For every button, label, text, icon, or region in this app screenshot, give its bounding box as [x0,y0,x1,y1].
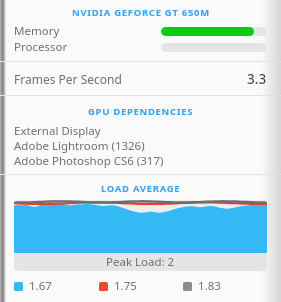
staticText: 1.75 [114,278,137,294]
staticText: 1.83 [198,278,221,294]
button[interactable]: External Display [0,123,281,138]
staticText: 3.3 [247,70,267,88]
staticText: External Display [14,123,101,138]
button[interactable]: Adobe Photoshop CS6 (317) [0,153,281,168]
staticText: Processor [14,39,68,55]
button[interactable]: 1.67 [14,278,99,294]
staticText: LOAD AVERAGE [101,182,181,195]
button[interactable]: Adobe Lightroom (1326) [0,138,281,153]
staticText: Memory [14,23,60,39]
staticText: Peak Load: 2 [106,254,175,270]
button[interactable]: Frames Per Second [0,62,281,95]
button[interactable]: 1.75 [99,278,183,294]
staticText: Adobe Lightroom (1326) [14,138,145,153]
button[interactable]: Memory [0,23,281,39]
staticText: Frames Per Second [14,71,122,87]
staticText: NVIDIA GEFORCE GT 650M [72,6,210,19]
button[interactable]: Peak Load: 2 [14,200,267,271]
staticText: Adobe Photoshop CS6 (317) [14,153,164,168]
button[interactable]: 1.83 [183,278,267,294]
staticText: 1.67 [29,278,52,294]
button[interactable]: Processor [0,39,281,55]
staticText: GPU DEPENDENCIES [88,105,194,118]
